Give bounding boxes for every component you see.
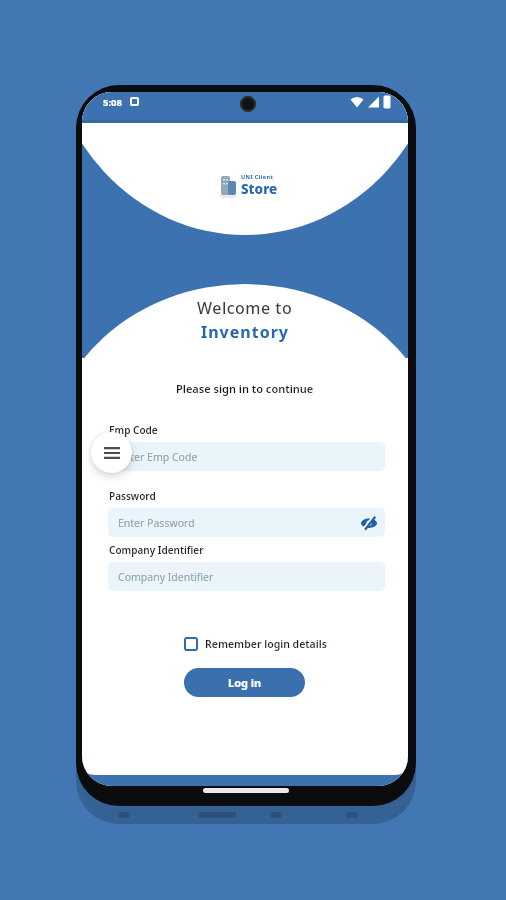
staticText: Welcome to: [197, 297, 293, 319]
staticText: Log in: [228, 675, 262, 690]
staticText: Emp Code: [109, 423, 158, 437]
staticText: Enter Password: [118, 516, 195, 530]
staticText: Password: [109, 489, 156, 503]
button[interactable]: Remember login details: [184, 637, 327, 651]
button[interactable]: Log in: [184, 668, 305, 697]
staticText: UNI Client: [241, 173, 274, 180]
staticText: Store: [241, 180, 278, 198]
button[interactable]: Enter Password: [108, 508, 385, 537]
staticText: 5:08: [103, 96, 122, 109]
staticText: Please sign in to continue: [176, 381, 314, 396]
button[interactable]: Enter Emp Code: [108, 442, 385, 471]
staticText: Enter Emp Code: [118, 450, 198, 464]
staticText: Inventory: [201, 321, 289, 343]
button[interactable]: Company Identifier: [108, 562, 385, 591]
staticText: Company Identifier: [109, 543, 204, 557]
staticText: Remember login details: [205, 637, 327, 651]
staticText: Company Identifier: [118, 570, 214, 584]
button[interactable]: [91, 432, 132, 473]
button[interactable]: [360, 515, 378, 531]
